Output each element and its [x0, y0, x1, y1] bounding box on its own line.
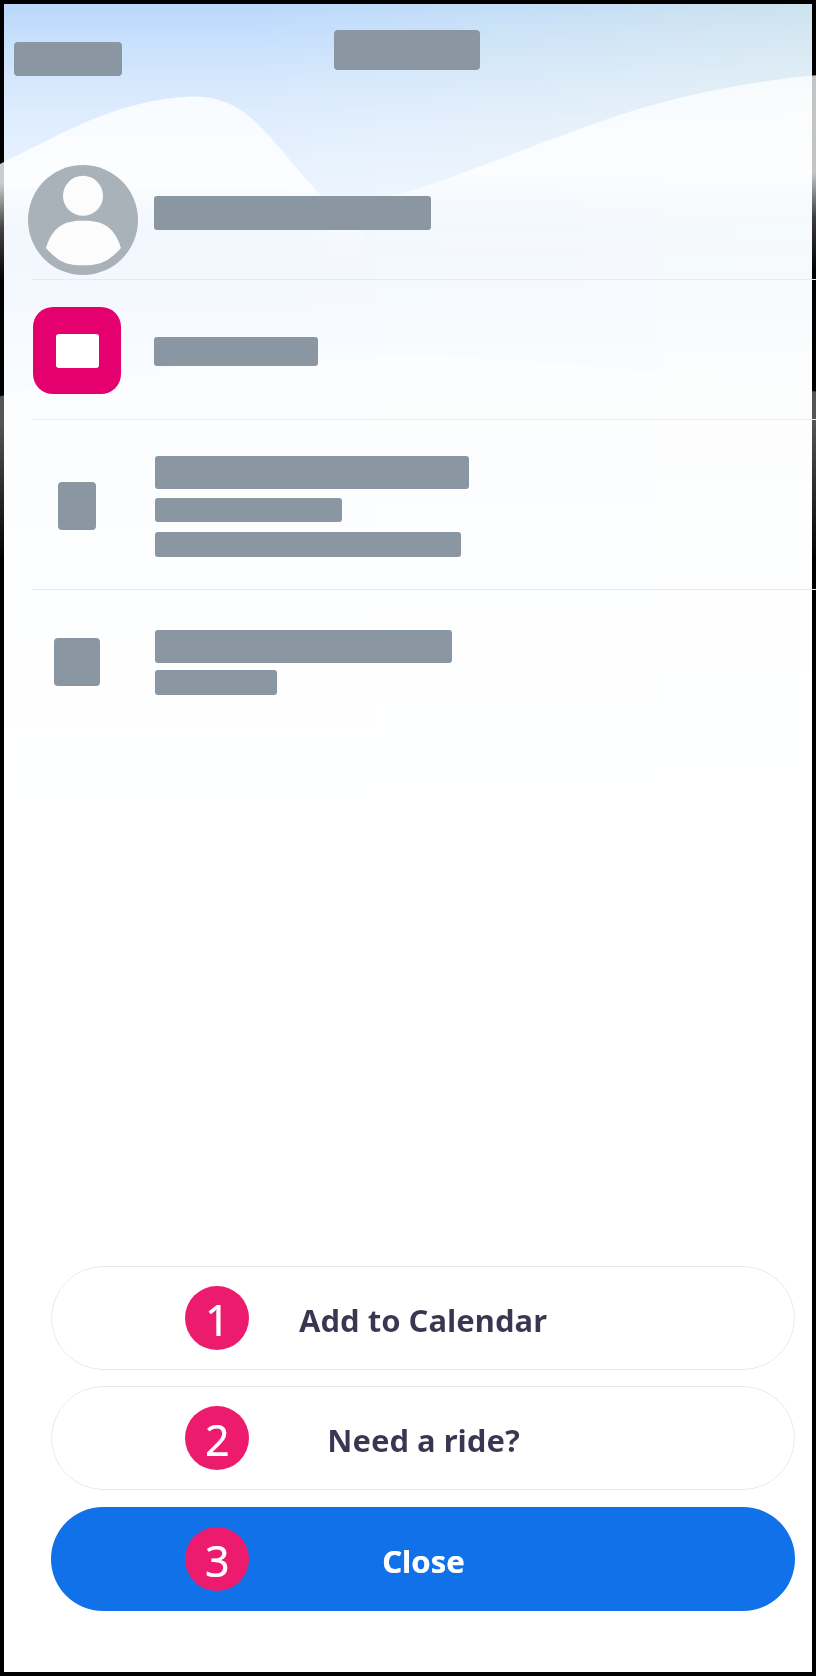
- button[interactable]: Navigate up: [14, 42, 122, 76]
- staticText: Add to Calendar: [299, 1299, 547, 1341]
- button[interactable]: Screen title: [334, 30, 480, 70]
- button[interactable]: Add to Calendar: [51, 1266, 795, 1370]
- staticText: 3: [205, 1531, 230, 1590]
- staticText: 2: [205, 1410, 230, 1469]
- staticText: Close: [382, 1540, 465, 1582]
- button[interactable]: Event: [4, 284, 812, 419]
- staticText: 1: [205, 1290, 230, 1349]
- staticText: Need a ride?: [327, 1419, 520, 1461]
- button[interactable]: Details: [4, 594, 812, 719]
- button[interactable]: Need a ride?: [51, 1386, 795, 1490]
- button[interactable]: Contact: [4, 137, 812, 283]
- button[interactable]: Close: [51, 1507, 795, 1611]
- button[interactable]: Location: [4, 424, 812, 589]
